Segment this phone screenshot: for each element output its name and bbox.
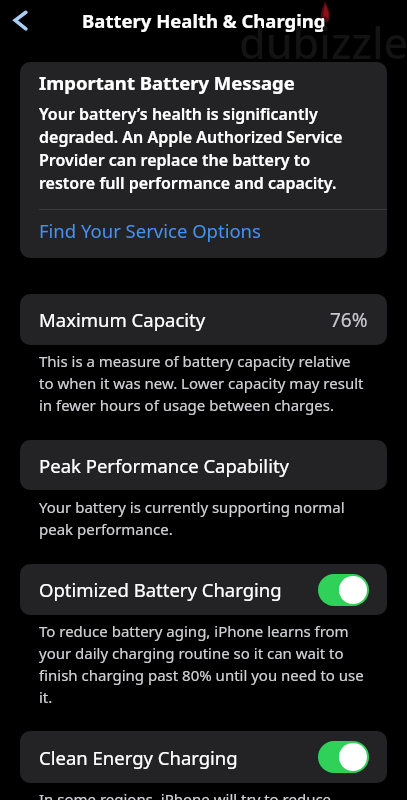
staticText: Important Battery Message (39, 70, 295, 95)
staticText: dubizzle (239, 13, 407, 72)
button[interactable]: Optimized Battery Charging (20, 564, 387, 615)
staticText: Optimized Battery Charging (39, 577, 282, 602)
button[interactable]: Toggle on (318, 574, 369, 606)
staticText: This is a measure of battery capacity re… (39, 351, 364, 416)
button[interactable]: Clean Energy Charging (20, 731, 387, 783)
staticText: To reduce battery aging, iPhone learns f… (39, 621, 364, 708)
staticText: In some regions, iPhone will try to redu… (39, 789, 364, 800)
staticText: Peak Performance Capability (39, 453, 290, 478)
staticText: 76% (330, 307, 368, 333)
button[interactable]: Back (2, 3, 38, 39)
staticText: Maximum Capacity (39, 307, 206, 332)
button[interactable]: Find Your Service Options (20, 204, 387, 256)
staticText: Your battery’s health is significantly d… (39, 103, 360, 194)
staticText: Battery Health & Charging (82, 8, 326, 33)
button[interactable]: Maximum Capacity (20, 294, 387, 345)
staticText: Your battery is currently supporting nor… (39, 497, 364, 540)
staticText: Clean Energy Charging (39, 745, 238, 770)
button[interactable]: Toggle on (318, 741, 369, 773)
staticText: Find Your Service Options (39, 218, 261, 243)
button[interactable]: Peak Performance Capability (20, 440, 387, 490)
